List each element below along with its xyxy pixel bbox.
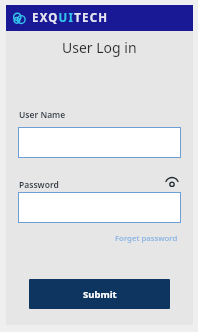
staticText: EXQUITECH [32, 10, 109, 26]
staticText: User Name [19, 109, 66, 121]
button[interactable]: Show password [163, 173, 181, 191]
button[interactable]: User Name input [18, 127, 181, 158]
button[interactable]: EXQUITECH [6, 5, 193, 31]
staticText: Submit [83, 288, 117, 301]
staticText: Password [19, 179, 59, 191]
button[interactable]: Submit [29, 279, 170, 309]
staticText: Forget password [115, 233, 178, 244]
button[interactable]: Password input [18, 192, 181, 223]
staticText: User Log in [62, 38, 137, 57]
button[interactable]: Forget password [113, 231, 180, 246]
